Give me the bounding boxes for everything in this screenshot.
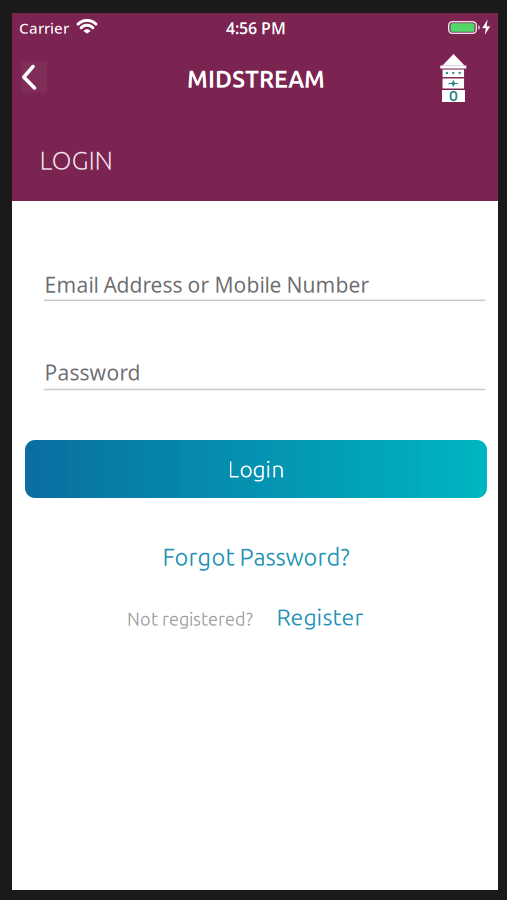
button[interactable]: Email Address or Mobile Number <box>44 258 485 312</box>
button[interactable]: Login <box>25 440 487 498</box>
staticText: Not registered? <box>127 609 253 629</box>
staticText: Carrier <box>19 18 69 38</box>
button[interactable]: Back <box>21 61 47 92</box>
staticText: Email Address or Mobile Number <box>44 270 369 299</box>
staticText: Register <box>276 604 363 630</box>
button[interactable]: Register <box>276 604 363 630</box>
staticText: Forgot Password? <box>162 544 349 570</box>
staticText: MIDSTREAM <box>187 66 325 92</box>
staticText: Password <box>44 358 140 387</box>
button[interactable]: Forgot Password? <box>162 544 349 570</box>
button[interactable]: Midstream Home <box>438 52 468 104</box>
staticText: Login <box>227 456 284 482</box>
staticText: 4:56 PM <box>226 17 286 39</box>
staticText: LOGIN <box>39 145 112 174</box>
button[interactable]: Password <box>44 345 485 399</box>
